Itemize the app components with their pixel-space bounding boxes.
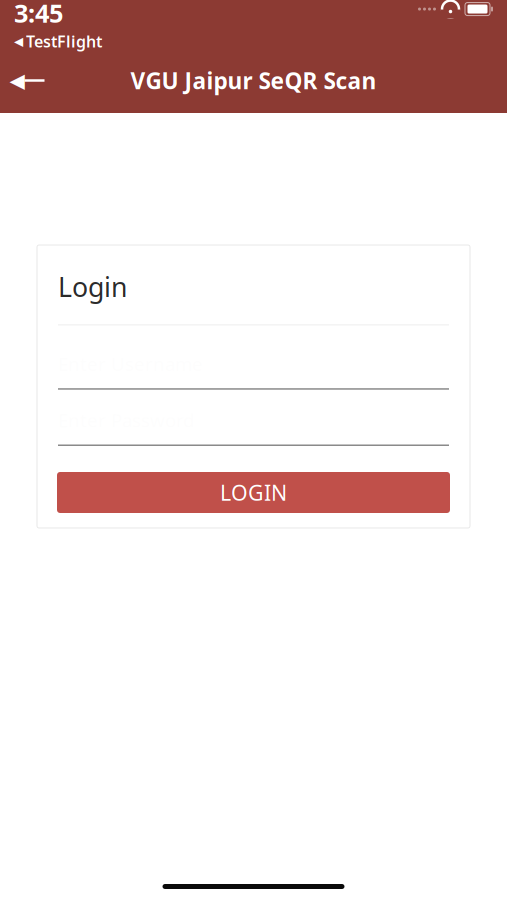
staticText: LOGIN xyxy=(220,478,287,507)
staticText: 3:45 xyxy=(14,0,63,30)
staticText: TestFlight xyxy=(26,31,102,52)
button[interactable]: Back xyxy=(0,58,56,102)
staticText: ◀ xyxy=(14,34,23,48)
staticText: VGU Jaipur SeQR Scan xyxy=(130,65,376,95)
staticText: Login xyxy=(58,269,127,304)
button[interactable]: LOGIN xyxy=(57,472,450,513)
staticText: ◀ xyxy=(9,69,24,92)
